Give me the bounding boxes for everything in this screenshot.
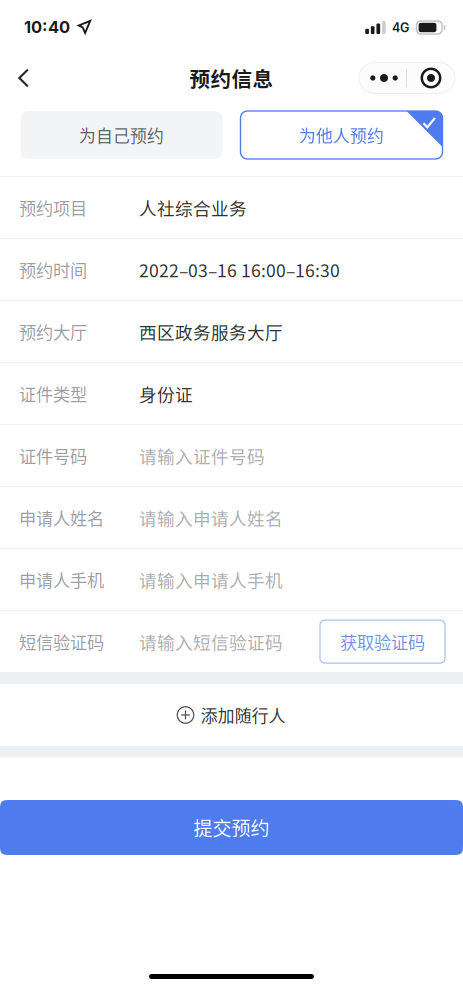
staticText: 证件类型 xyxy=(19,381,87,406)
staticText: 请输入短信验证码 xyxy=(139,629,283,654)
staticText: 人社综合业务 xyxy=(139,195,247,220)
staticText: 申请人手机 xyxy=(19,567,104,592)
staticText: 获取验证码 xyxy=(340,629,425,654)
staticText: 添加随行人 xyxy=(201,703,286,727)
button[interactable]: 添加随行人 xyxy=(0,684,463,746)
button[interactable]: 获取验证码 xyxy=(320,620,463,663)
button[interactable]: 提交预约 xyxy=(0,800,463,855)
staticText: 西区政务服务大厅 xyxy=(139,319,283,344)
staticText: 4G xyxy=(392,20,409,35)
staticText: 预约大厅 xyxy=(19,319,87,344)
staticText: 提交预约 xyxy=(193,814,269,841)
staticText: 为自己预约 xyxy=(79,123,164,147)
staticText: 为他人预约 xyxy=(299,123,384,147)
staticText: 预约信息 xyxy=(189,63,273,93)
button[interactable]: Back xyxy=(0,53,43,103)
staticText: 请输入申请人姓名 xyxy=(139,505,283,530)
staticText: 身份证 xyxy=(139,381,193,406)
staticText: 证件号码 xyxy=(19,443,87,468)
button[interactable]: 为自己预约 xyxy=(20,111,222,159)
staticText: 预约项目 xyxy=(19,195,87,220)
staticText: 预约时间 xyxy=(19,257,87,282)
staticText: 请输入申请人手机 xyxy=(139,567,283,592)
staticText: 请输入证件号码 xyxy=(139,443,265,468)
staticText: 短信验证码 xyxy=(19,629,104,654)
button[interactable]: 为他人预约 xyxy=(240,111,442,159)
staticText: 10:40 xyxy=(24,17,70,37)
button[interactable]: More options xyxy=(359,62,463,93)
staticText: 2022–03–16 16:00–16:30 xyxy=(139,257,340,282)
staticText: 申请人姓名 xyxy=(19,505,104,530)
